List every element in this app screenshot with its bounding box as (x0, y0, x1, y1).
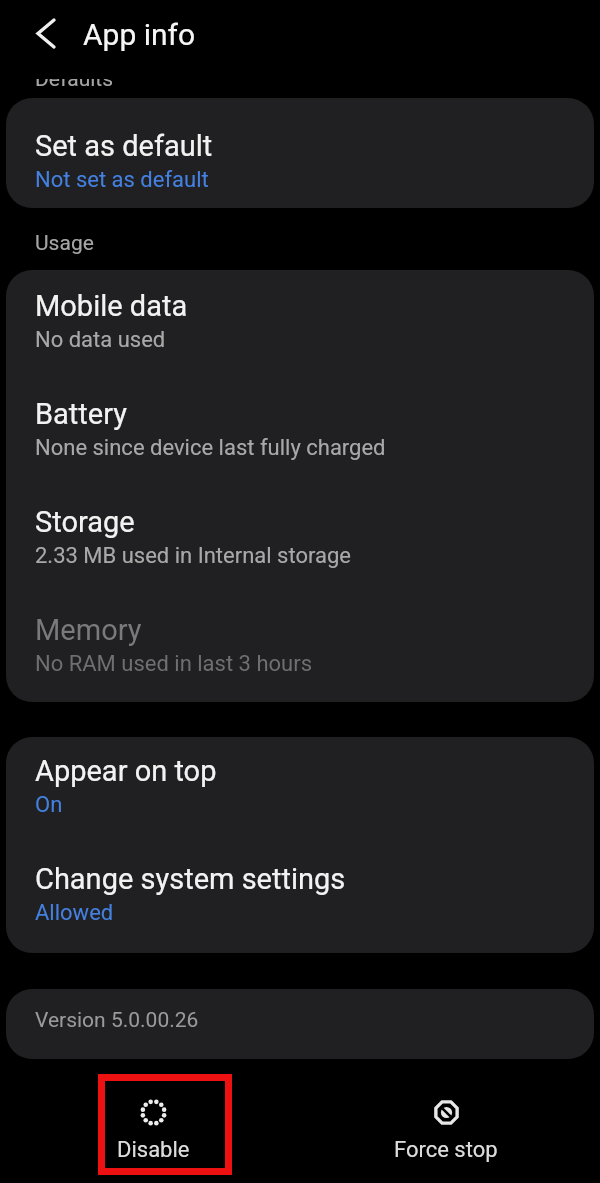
staticText: Mobile data (35, 289, 188, 323)
button[interactable]: Disable (117, 1099, 190, 1163)
staticText: Version 5.0.00.26 (35, 1008, 199, 1033)
button[interactable]: Battery (6, 378, 594, 486)
button[interactable]: Force stop (394, 1099, 498, 1163)
staticText: Battery (35, 397, 127, 431)
staticText: No data used (35, 327, 166, 353)
staticText: Usage (35, 231, 94, 256)
staticText: Allowed (35, 900, 114, 926)
staticText: Storage (35, 505, 135, 539)
staticText: Change system settings (35, 862, 346, 896)
staticText: None since device last fully charged (35, 435, 386, 461)
staticText: Force stop (394, 1137, 498, 1163)
staticText: On (35, 792, 63, 818)
staticText: Set as default (35, 129, 213, 163)
button[interactable]: Memory (6, 594, 594, 702)
button[interactable]: Set as default (6, 98, 594, 208)
staticText: Disable (117, 1137, 190, 1163)
button[interactable]: Change system settings (6, 845, 594, 953)
staticText: Appear on top (35, 754, 217, 788)
staticText: App info (83, 17, 196, 52)
staticText: 2.33 MB used in Internal storage (35, 543, 351, 569)
button[interactable]: Appear on top (6, 737, 594, 845)
staticText: No RAM used in last 3 hours (35, 651, 312, 677)
button[interactable]: Mobile data (6, 270, 594, 378)
button[interactable] (22, 10, 70, 58)
staticText: Defaults (35, 67, 114, 92)
staticText: Not set as default (35, 167, 209, 193)
button[interactable]: Storage (6, 486, 594, 594)
staticText: Memory (35, 613, 142, 647)
